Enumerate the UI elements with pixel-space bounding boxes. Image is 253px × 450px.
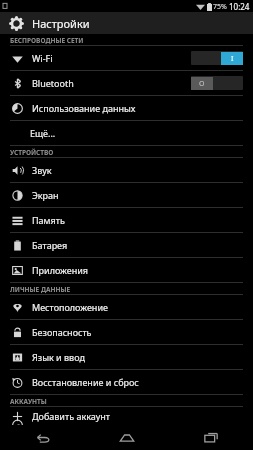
staticText: Местоположение [32, 301, 108, 313]
button[interactable]: Wi-Fi [0, 46, 253, 70]
staticText: Звук [32, 164, 52, 176]
staticText: Память [32, 214, 65, 226]
button[interactable]: Back [0, 425, 85, 450]
staticText: Использование данных [32, 102, 136, 114]
staticText: O [199, 79, 205, 89]
button[interactable]: Приложения [0, 258, 253, 282]
button[interactable]: Экран [0, 183, 253, 207]
staticText: АККАУНТЫ [10, 397, 47, 406]
staticText: Язык и ввод [32, 351, 85, 363]
staticText: Экран [32, 189, 59, 201]
button[interactable]: Recent apps [169, 425, 253, 450]
staticText: Приложения [32, 264, 89, 276]
staticText: УСТРОЙСТВО [10, 148, 54, 157]
button[interactable]: Безопасность [0, 320, 253, 344]
staticText: БЕСПРОВОДНЫЕ СЕТИ [10, 36, 84, 45]
staticText: Wi-Fi [32, 52, 53, 64]
button[interactable]: Звук [0, 158, 253, 182]
staticText: Bluetooth [32, 77, 74, 89]
staticText: 10:24 [229, 1, 250, 12]
button[interactable]: Bluetooth [0, 71, 253, 95]
button[interactable]: Добавить аккаунт [0, 407, 253, 425]
staticText: Восстановление и сброс [32, 376, 139, 388]
button[interactable]: Ещё... [0, 121, 253, 145]
button[interactable]: O [191, 76, 243, 90]
button[interactable]: Местоположение [0, 295, 253, 319]
button[interactable]: Использование данных [0, 96, 253, 120]
staticText: 75% [213, 2, 227, 12]
button[interactable]: Восстановление и сброс [0, 370, 253, 394]
button[interactable]: Язык и ввод [0, 345, 253, 369]
staticText: Настройки [32, 16, 90, 31]
staticText: Батарея [32, 239, 68, 251]
staticText: Ещё... [30, 127, 56, 139]
staticText: Безопасность [32, 326, 92, 338]
staticText: I [231, 54, 234, 64]
button[interactable]: I [191, 51, 243, 65]
button[interactable]: Батарея [0, 233, 253, 257]
button[interactable]: Память [0, 208, 253, 232]
staticText: ЛИЧНЫЕ ДАННЫЕ [10, 285, 71, 294]
staticText: Добавить аккаунт [32, 410, 110, 422]
button[interactable]: Home [85, 425, 169, 450]
button[interactable]: Настройки [0, 12, 253, 34]
